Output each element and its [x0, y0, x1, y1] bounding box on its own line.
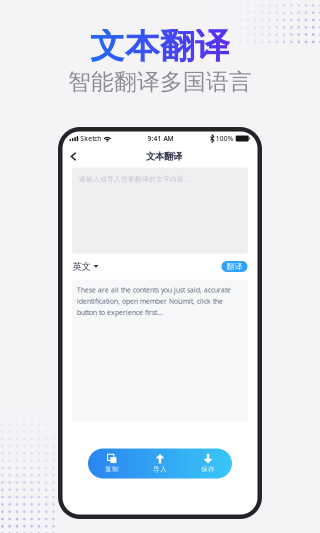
button[interactable]: 翻译 — [221, 261, 247, 272]
button[interactable]: 复制 — [88, 448, 232, 478]
button[interactable]: 英文 — [72, 261, 98, 272]
staticText: 100% — [216, 134, 234, 143]
staticText: 智能翻译多国语言 — [68, 68, 252, 96]
staticText: 保存 — [201, 465, 215, 473]
staticText: 文本翻译 — [146, 151, 182, 162]
staticText: 英文 — [72, 261, 90, 272]
button[interactable]: Back — [70, 147, 90, 165]
staticText: These are all the contents you just said… — [77, 285, 231, 317]
staticText: 翻译 — [226, 262, 242, 271]
staticText: 9:41 AM — [148, 134, 174, 143]
staticText: 请输入或导入您要翻译的文字内容... — [79, 174, 190, 183]
staticText: Sketch — [80, 134, 101, 143]
staticText: 导入 — [153, 465, 167, 473]
staticText: 复制 — [105, 465, 119, 473]
